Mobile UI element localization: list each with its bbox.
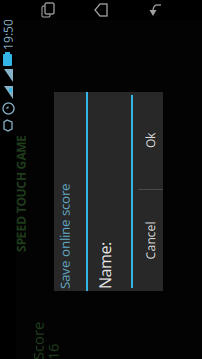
staticText: SPEED TOUCH GAME [28, 91, 145, 107]
staticText: Save online score [0, 134, 97, 152]
button[interactable]: Cancel [0, 216, 90, 241]
button[interactable]: Ok [91, 216, 188, 241]
staticText: Ok [132, 221, 147, 237]
staticText: Cancel [21, 221, 59, 237]
staticText: Name: [0, 173, 38, 194]
